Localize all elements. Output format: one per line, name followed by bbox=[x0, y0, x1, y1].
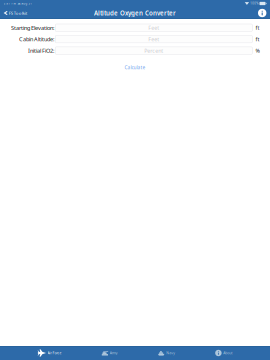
staticText: Navy bbox=[166, 351, 175, 355]
staticText: Initial FiO2: bbox=[28, 47, 55, 54]
staticText: % bbox=[255, 47, 259, 54]
staticText: Starting Elevation: bbox=[11, 24, 55, 31]
button[interactable]: Navy bbox=[158, 350, 175, 356]
staticText: ft bbox=[255, 35, 259, 43]
staticText: Army bbox=[110, 351, 118, 355]
staticText: 100% bbox=[250, 2, 258, 5]
button[interactable]: About this converter bbox=[258, 9, 266, 17]
button[interactable]: About bbox=[215, 350, 232, 356]
button[interactable]: Air Force bbox=[38, 349, 62, 357]
staticText: 5:41 PM Sat Aug 31 bbox=[3, 2, 32, 5]
staticText: FS Toolkit bbox=[9, 10, 28, 16]
staticText: Percent bbox=[144, 47, 163, 54]
staticText: Cabin Altitude: bbox=[19, 35, 55, 43]
button[interactable]: Army bbox=[102, 350, 118, 356]
button[interactable]: FS Toolkit bbox=[4, 9, 28, 17]
staticText: About bbox=[223, 351, 232, 355]
button[interactable]: Calculate bbox=[117, 62, 152, 73]
staticText: Calculate bbox=[124, 64, 145, 71]
staticText: Feet bbox=[148, 24, 159, 31]
staticText: Altitude Oxygen Converter bbox=[94, 9, 176, 17]
staticText: Feet bbox=[148, 35, 159, 43]
staticText: Air Force bbox=[48, 351, 62, 355]
staticText: ft bbox=[255, 24, 259, 31]
